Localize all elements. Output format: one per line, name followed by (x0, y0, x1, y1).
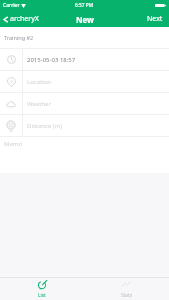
button[interactable]: Stats (84, 278, 169, 300)
button[interactable]: Next (142, 11, 169, 27)
staticText: 2015-05-03 18:57 (27, 56, 76, 64)
staticText: archeryX (10, 14, 39, 24)
button[interactable]: 2015-05-03 18:57 (0, 49, 169, 70)
staticText: Weather (27, 100, 51, 108)
staticText: Memo (4, 140, 23, 148)
staticText: Location (27, 78, 52, 86)
button[interactable]: Distance (m) (0, 115, 169, 136)
button[interactable]: Weather (0, 93, 169, 114)
button[interactable]: archeryX (0, 12, 44, 26)
staticText: List (38, 292, 46, 299)
button[interactable]: List (0, 278, 84, 300)
staticText: Next (147, 14, 163, 24)
staticText: 6:57 PM (75, 2, 94, 9)
staticText: Carrier (3, 2, 20, 9)
button[interactable]: Location (0, 71, 169, 92)
staticText: Stats (121, 292, 133, 299)
staticText: Distance (m) (27, 122, 63, 130)
staticText: New (76, 14, 94, 25)
staticText: Training #2 (4, 34, 34, 41)
